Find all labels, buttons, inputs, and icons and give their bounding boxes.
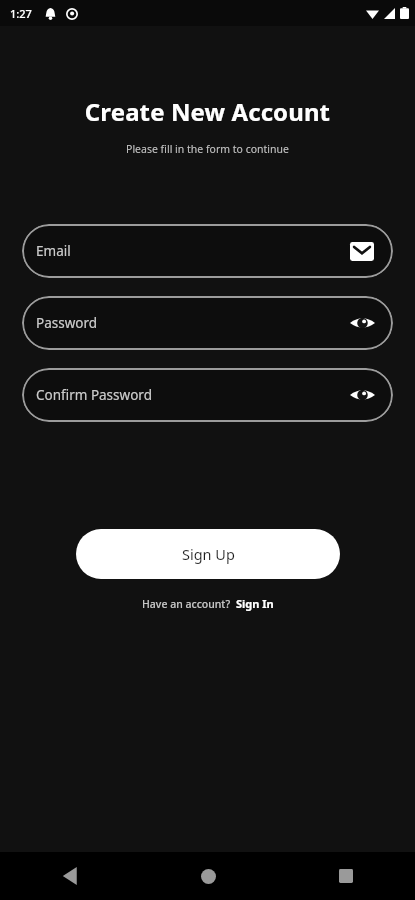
button[interactable]: Recent apps [277, 852, 415, 900]
staticText: Create New Account [0, 95, 415, 128]
staticText: 1:27 [10, 6, 32, 21]
staticText: Email [36, 242, 71, 260]
staticText: Confirm Password [36, 386, 152, 404]
button[interactable]: Confirm Password [22, 368, 393, 422]
button[interactable]: Toggle password visibility [345, 378, 379, 412]
button[interactable]: Toggle password visibility [345, 306, 379, 340]
button[interactable]: Sign In [236, 596, 274, 611]
staticText: Have an account? [142, 597, 231, 611]
button[interactable]: Home [139, 852, 277, 900]
button[interactable]: Back [0, 852, 139, 900]
staticText: Please fill in the form to continue [0, 142, 415, 156]
button[interactable]: Password [22, 296, 393, 350]
staticText: Sign Up [182, 544, 235, 564]
button[interactable]: Email [22, 224, 393, 278]
button[interactable]: Sign Up [76, 529, 340, 579]
staticText: Password [36, 314, 98, 332]
button[interactable]: Email [345, 234, 379, 268]
staticText: Sign In [236, 596, 274, 611]
